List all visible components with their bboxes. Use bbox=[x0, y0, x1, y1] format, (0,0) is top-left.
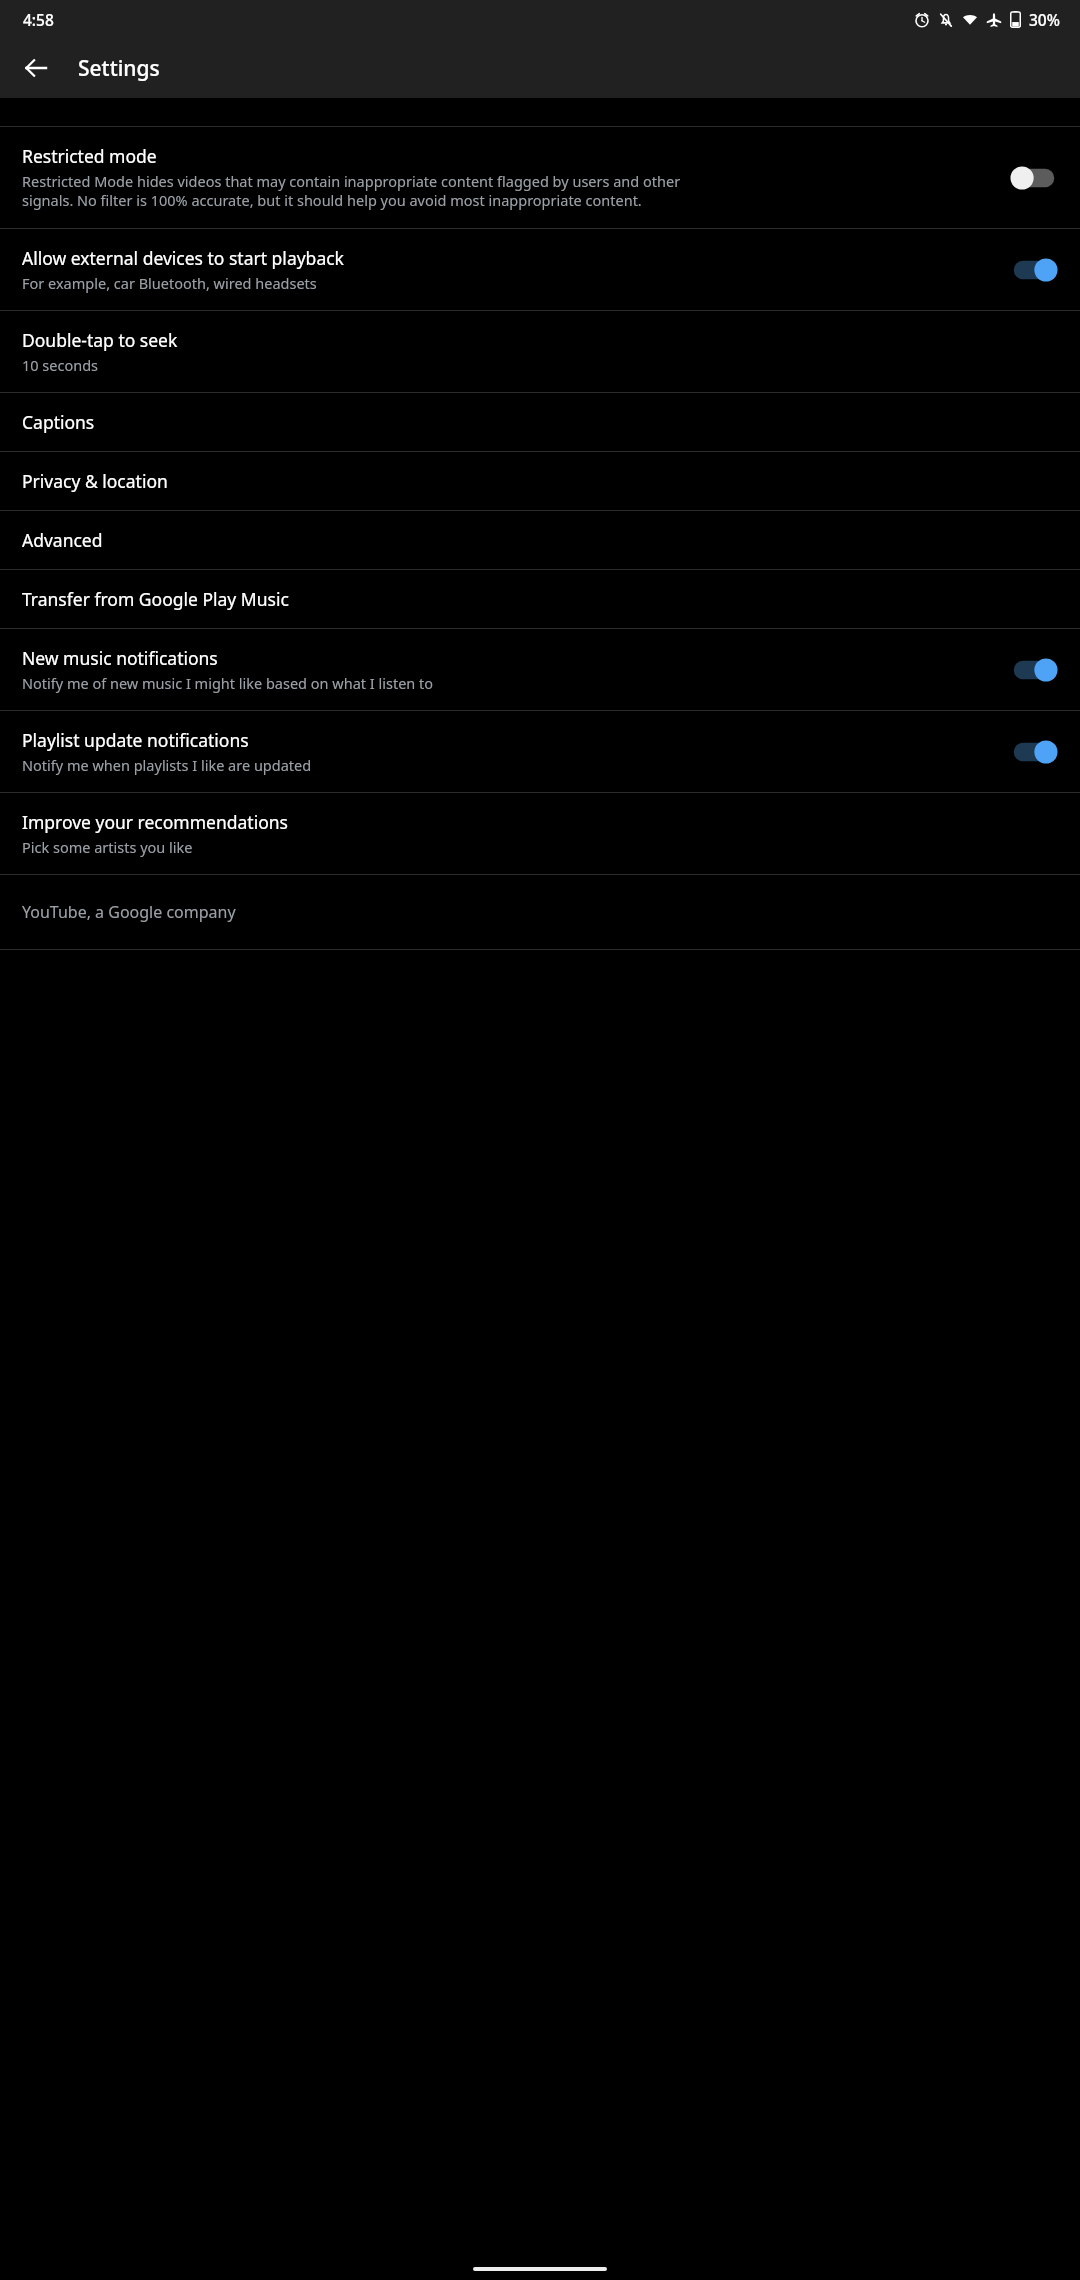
staticText: 4:58 bbox=[23, 9, 54, 30]
staticText: Improve your recommendations bbox=[22, 810, 288, 834]
staticText: Notify me when playlists I like are upda… bbox=[22, 755, 744, 775]
button[interactable]: Transfer from Google Play Music bbox=[0, 570, 1080, 628]
staticText: Restricted mode bbox=[22, 144, 705, 168]
button[interactable]: New music notifications bbox=[1008, 650, 1060, 690]
button[interactable]: Restricted mode bbox=[0, 127, 1080, 228]
button[interactable]: Restricted mode bbox=[1008, 158, 1060, 198]
staticText: 30% bbox=[1029, 9, 1060, 30]
button[interactable]: New music notifications bbox=[0, 629, 1080, 710]
staticText: YouTube, a Google company bbox=[22, 901, 236, 923]
button[interactable]: Improve your recommendations bbox=[0, 793, 1080, 874]
button[interactable]: Back bbox=[12, 44, 60, 92]
button[interactable]: Privacy & location bbox=[0, 452, 1080, 510]
staticText: Double-tap to seek bbox=[22, 328, 178, 352]
button[interactable]: Captions bbox=[0, 393, 1080, 451]
staticText: Transfer from Google Play Music bbox=[22, 587, 289, 611]
staticText: 10 seconds bbox=[22, 355, 99, 375]
staticText: Advanced bbox=[22, 528, 103, 552]
button[interactable]: Double-tap to seek bbox=[0, 311, 1080, 392]
button[interactable]: YouTube, a Google company bbox=[0, 875, 1080, 949]
staticText: Settings bbox=[78, 54, 160, 83]
staticText: For example, car Bluetooth, wired headse… bbox=[22, 273, 754, 293]
button[interactable]: Allow external devices to start playback bbox=[0, 229, 1080, 310]
staticText: Playlist update notifications bbox=[22, 728, 744, 752]
staticText: Captions bbox=[22, 410, 95, 434]
staticText: Notify me of new music I might like base… bbox=[22, 673, 744, 693]
button[interactable]: Playlist update notifications bbox=[1008, 732, 1060, 772]
staticText: New music notifications bbox=[22, 646, 744, 670]
staticText: Pick some artists you like bbox=[22, 837, 193, 857]
button[interactable]: Advanced bbox=[0, 511, 1080, 569]
staticText: Privacy & location bbox=[22, 469, 168, 493]
staticText: Allow external devices to start playback bbox=[22, 246, 754, 270]
button[interactable]: Playlist update notifications bbox=[0, 711, 1080, 792]
staticText: Restricted Mode hides videos that may co… bbox=[22, 171, 705, 211]
button[interactable]: Allow external devices to start playback bbox=[1008, 250, 1060, 290]
